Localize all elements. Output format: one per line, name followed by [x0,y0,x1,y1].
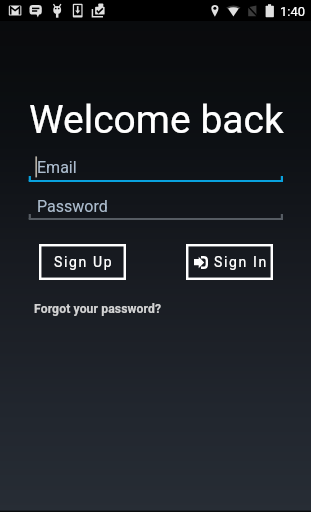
button[interactable]: Forgot your password? [31,299,163,321]
staticText: Forgot your password? [34,302,162,316]
staticText: 1:40 [280,4,306,19]
staticText: Password [37,197,108,216]
staticText: Email [37,158,77,177]
button[interactable]: Email [0,156,311,183]
staticText: Sign Up [54,254,114,270]
button[interactable]: Sign Up [39,244,126,280]
staticText: Welcome back [29,97,284,143]
button[interactable]: Password [0,194,311,221]
staticText: Sign In [214,254,268,270]
button[interactable]: Sign In [186,244,273,280]
